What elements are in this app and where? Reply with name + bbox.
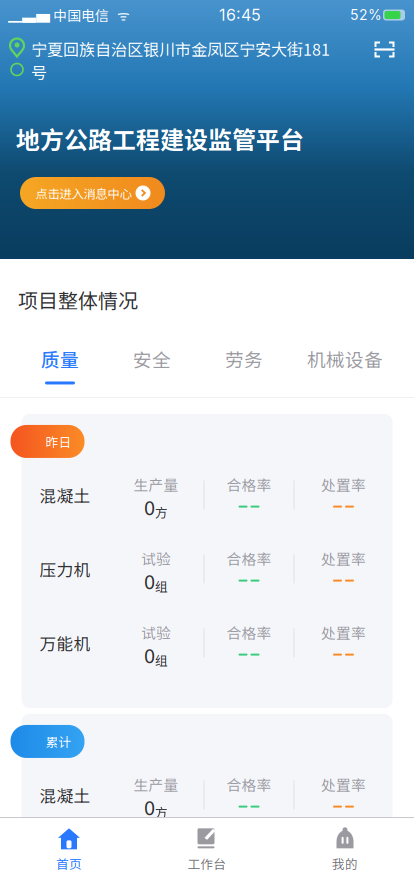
staticText: 工作台 [187, 854, 226, 873]
staticText: ▁▃▅ 中国电信 [8, 5, 109, 25]
staticText: 累计 [45, 732, 71, 751]
staticText: 压力机 [39, 857, 90, 881]
staticText: 方 [155, 503, 168, 521]
staticText: 地方公路工程建设监管平台 [16, 121, 304, 156]
staticText: 0 [144, 792, 155, 821]
staticText: 合格率 [226, 474, 271, 495]
button[interactable]: 我的 [276, 826, 414, 874]
staticText: 52% [350, 6, 382, 23]
staticText: 处置率 [321, 548, 366, 569]
staticText: 0 [144, 492, 155, 521]
staticText: 生产量 [133, 774, 178, 795]
staticText: 处置率 [321, 474, 366, 495]
staticText: 试验 [141, 548, 171, 569]
button[interactable]: 工作台 [138, 826, 276, 874]
button[interactable]: 质量 [14, 343, 106, 387]
staticText: 合格率 [226, 622, 271, 643]
staticText: 安全 [133, 345, 171, 372]
staticText: 首页 [56, 854, 82, 873]
staticText: 0 [144, 566, 155, 595]
staticText: 组 [155, 651, 168, 669]
staticText: 机械设备 [307, 345, 383, 372]
staticText: 生产量 [133, 474, 178, 495]
staticText: 合格率 [226, 548, 271, 569]
staticText: 混凝土 [39, 783, 90, 807]
button[interactable]: 机械设备 [290, 343, 400, 387]
staticText: 点击进入消息中心 [35, 184, 131, 202]
staticText: 合格率 [226, 774, 271, 795]
staticText: 劳务 [225, 345, 263, 372]
staticText: 万能机 [39, 631, 90, 655]
staticText: 处置率 [321, 622, 366, 643]
staticText: ᯤ [109, 5, 130, 25]
staticText: 昨日 [45, 432, 71, 451]
staticText: 组 [155, 577, 168, 595]
staticText: 处置率 [321, 774, 366, 795]
button[interactable]: 首页 [0, 826, 138, 874]
staticText: 混凝土 [39, 483, 90, 507]
staticText: 项目整体情况 [18, 285, 138, 314]
staticText: 试验 [141, 622, 171, 643]
button[interactable]: 安全 [106, 343, 198, 387]
staticText: 方 [155, 803, 168, 821]
staticText: 宁夏回族自治区银川市金凤区宁安大街181 号 [31, 37, 330, 84]
staticText: 处置率 [321, 848, 366, 869]
button[interactable]: 点击进入消息中心 [20, 177, 165, 209]
staticText: 0 [144, 640, 155, 669]
staticText: 压力机 [39, 557, 90, 581]
staticText: 16:45 [219, 5, 261, 25]
button[interactable]: 劳务 [198, 343, 290, 387]
staticText: 质量 [41, 345, 79, 372]
staticText: 我的 [332, 854, 358, 873]
button[interactable]: 扫一扫 [374, 39, 395, 60]
